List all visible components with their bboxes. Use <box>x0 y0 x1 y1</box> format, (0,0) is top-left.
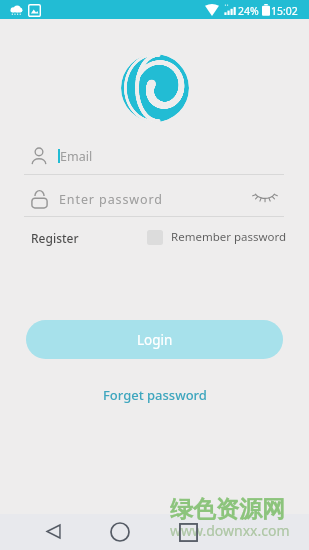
staticText: Email <box>60 148 93 165</box>
button[interactable]: Recents <box>171 515 205 549</box>
staticText: Login <box>137 331 173 349</box>
button[interactable]: Login <box>26 320 283 359</box>
button[interactable]: Forget password <box>103 386 207 404</box>
staticText: www.downxx.com <box>170 521 290 540</box>
staticText: 15:02 <box>271 4 298 18</box>
staticText: 24% <box>238 4 259 18</box>
button[interactable]: Remember password <box>147 228 287 246</box>
staticText: 绿色资源网 <box>170 495 285 524</box>
staticText: Remember password <box>171 229 287 245</box>
staticText: Register <box>31 230 79 246</box>
staticText: Forget password <box>103 386 207 404</box>
staticText: Enter password <box>59 191 163 208</box>
button[interactable]: Show password <box>252 186 276 210</box>
button[interactable]: Home <box>103 515 137 549</box>
button[interactable]: Register <box>31 230 79 246</box>
button[interactable]: Back <box>36 515 70 549</box>
